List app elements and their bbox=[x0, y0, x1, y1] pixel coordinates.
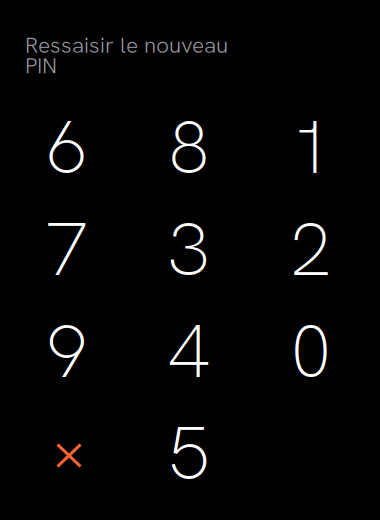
staticText: 8 bbox=[168, 98, 210, 196]
button[interactable]: 4 bbox=[128, 300, 250, 402]
staticText: 1 bbox=[290, 98, 332, 196]
staticText: 4 bbox=[168, 302, 210, 400]
button[interactable]: 3 bbox=[128, 198, 250, 300]
staticText: 7 bbox=[46, 200, 88, 298]
staticText: 0 bbox=[290, 302, 332, 400]
staticText: 6 bbox=[46, 98, 88, 196]
button[interactable]: 7 bbox=[6, 198, 128, 300]
button[interactable]: 8 bbox=[128, 96, 250, 198]
button[interactable]: 9 bbox=[6, 300, 128, 402]
button[interactable]: 6 bbox=[6, 96, 128, 198]
button[interactable]: 2 bbox=[250, 198, 372, 300]
staticText: 9 bbox=[46, 302, 88, 400]
staticText: 2 bbox=[290, 200, 332, 298]
staticText: Ressaisir le nouveau PIN bbox=[25, 30, 228, 80]
staticText: 5 bbox=[168, 404, 210, 502]
button[interactable]: 5 bbox=[128, 402, 250, 504]
button[interactable]: 0 bbox=[250, 300, 372, 402]
button[interactable]: Delete bbox=[6, 402, 128, 504]
button[interactable]: 1 bbox=[250, 96, 372, 198]
staticText: 3 bbox=[168, 200, 210, 298]
